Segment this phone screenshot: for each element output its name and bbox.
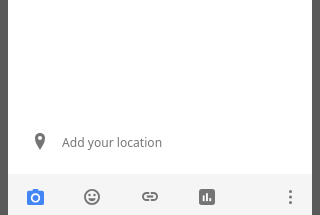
button[interactable]: Add your location — [8, 126, 312, 157]
button[interactable]: Link — [134, 178, 166, 215]
button[interactable]: More options — [274, 178, 306, 215]
button[interactable]: Camera — [19, 178, 51, 215]
button[interactable]: Emoji — [76, 178, 108, 215]
button[interactable]: Poll — [191, 178, 223, 215]
staticText: Add your location — [62, 134, 163, 150]
